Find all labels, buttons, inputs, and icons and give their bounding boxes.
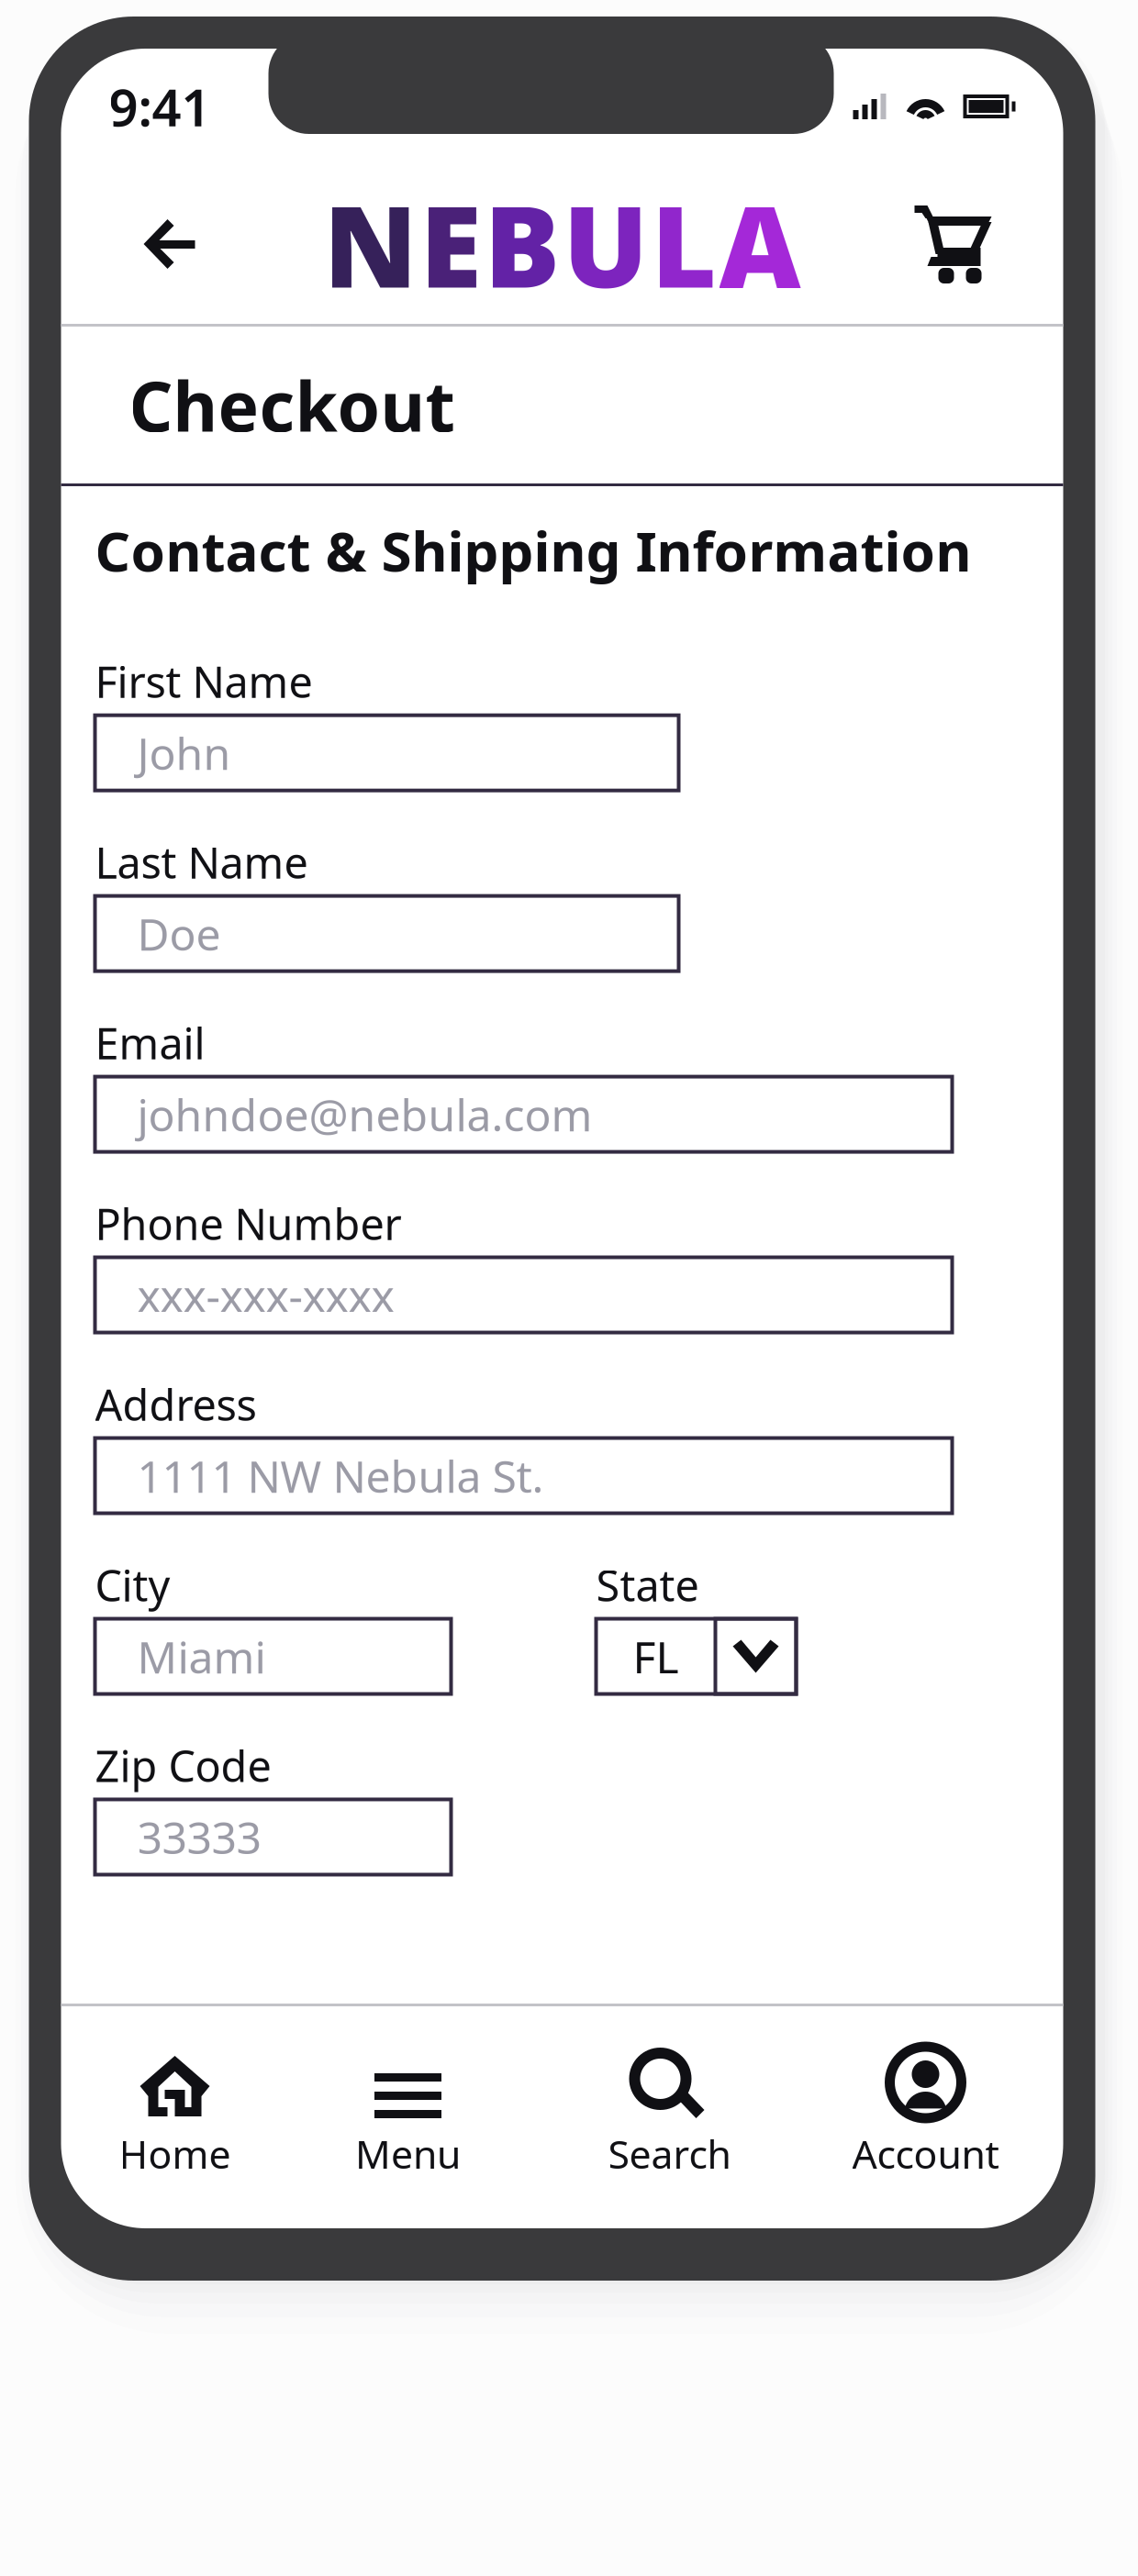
button[interactable]: Search	[527, 2045, 812, 2179]
button[interactable]: xxx-xxx-xxxx	[95, 1257, 952, 1333]
staticText: City	[95, 1556, 170, 1613]
staticText: Miami	[137, 1627, 266, 1686]
staticText: B	[484, 169, 560, 319]
staticText: E	[420, 169, 481, 319]
staticText: First Name	[95, 653, 312, 710]
button[interactable]: John	[95, 715, 679, 790]
staticText: Address	[95, 1376, 257, 1433]
button[interactable]: Shopping cart	[894, 189, 1014, 299]
staticText: Menu	[355, 2127, 461, 2179]
button[interactable]: Menu	[289, 2045, 527, 2179]
staticText: State	[596, 1556, 699, 1613]
staticText: John	[137, 724, 231, 782]
staticText: xxx-xxx-xxxx	[137, 1266, 394, 1324]
staticText: 9:41	[109, 72, 211, 141]
staticText: 1111 NW Nebula St.	[137, 1446, 544, 1505]
staticText: Search	[608, 2127, 731, 2179]
staticText: Last Name	[95, 834, 308, 890]
staticText: Phone Number	[95, 1195, 402, 1252]
button[interactable]: FL	[596, 1619, 796, 1694]
staticText: Contact & Shipping Information	[95, 514, 971, 587]
staticText: N	[324, 169, 417, 319]
button[interactable]: 33333	[95, 1799, 451, 1875]
button[interactable]: Doe	[95, 896, 679, 971]
staticText: Home	[119, 2127, 231, 2179]
staticText: U	[563, 169, 648, 319]
button[interactable]: Home	[61, 2045, 289, 2179]
staticText: Email	[95, 1014, 205, 1071]
staticText: FL	[633, 1627, 679, 1686]
staticText: Zip Code	[95, 1737, 271, 1794]
staticText: Checkout	[129, 360, 455, 451]
button[interactable]: Back	[111, 189, 230, 299]
button[interactable]: johndoe@nebula.com	[95, 1077, 952, 1152]
button[interactable]: Miami	[95, 1619, 451, 1694]
staticText: johndoe@nebula.com	[137, 1085, 592, 1143]
staticText: L	[651, 169, 716, 319]
staticText: Doe	[137, 904, 221, 963]
staticText: Account	[852, 2127, 999, 2179]
button[interactable]: 1111 NW Nebula St.	[95, 1438, 952, 1513]
staticText: A	[719, 169, 801, 319]
button[interactable]: Account	[812, 2045, 1039, 2179]
staticText: 33333	[137, 1808, 261, 1866]
